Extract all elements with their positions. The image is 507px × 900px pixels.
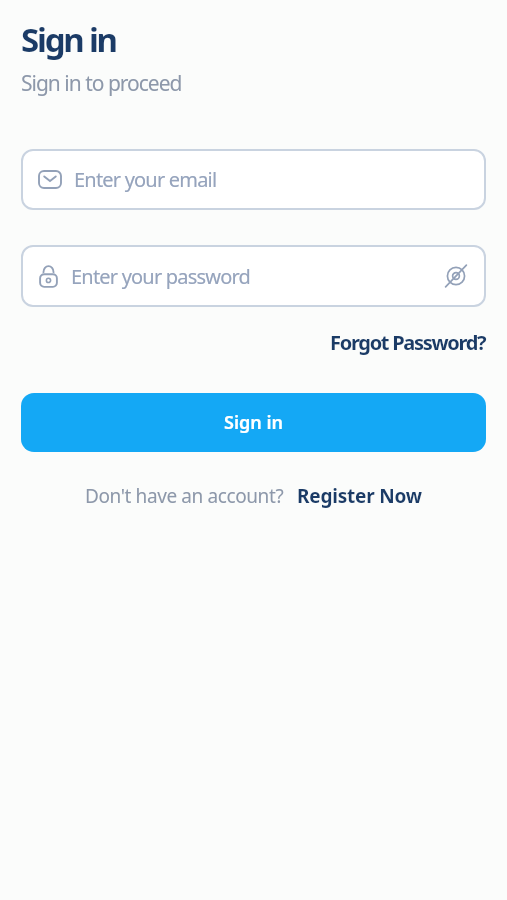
staticText: Register Now [297, 483, 422, 509]
staticText: Sign in to proceed [21, 69, 182, 98]
staticText: Enter your email [74, 166, 217, 193]
button[interactable]: Enter your email [21, 149, 486, 210]
staticText: Sign in [21, 17, 116, 62]
staticText: Sign in [224, 410, 284, 435]
staticText: Don't have an account? [85, 483, 284, 509]
button[interactable]: Sign in [21, 393, 486, 452]
button[interactable]: Enter your password [21, 245, 486, 307]
button[interactable]: Forgot Password? [330, 329, 486, 356]
button[interactable]: Don't have an account? [21, 483, 486, 509]
staticText: Enter your password [71, 263, 251, 290]
